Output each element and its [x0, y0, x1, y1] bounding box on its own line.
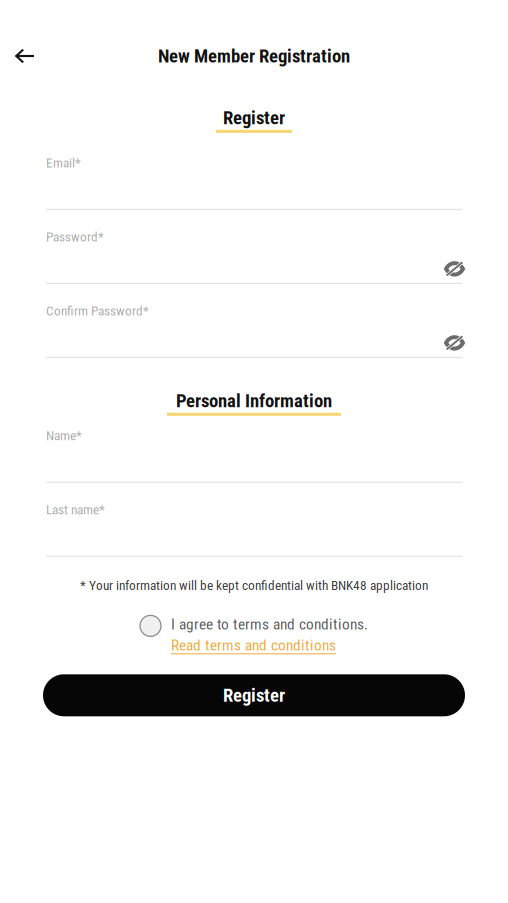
staticText: Password* [46, 229, 104, 245]
button[interactable]: Confirm Password* [46, 305, 462, 358]
button[interactable]: Back [0, 38, 50, 74]
staticText: Last name* [46, 502, 105, 517]
staticText: Personal Information [176, 390, 332, 412]
staticText: Confirm Password* [46, 303, 149, 319]
button[interactable]: Name* [46, 430, 462, 483]
staticText: Register [223, 107, 285, 129]
button[interactable]: Password* [46, 231, 462, 284]
button[interactable]: Show password [445, 261, 462, 276]
button[interactable]: Last name* [46, 504, 462, 557]
button[interactable]: Email* [46, 157, 462, 210]
staticText: Read terms and conditions [171, 636, 336, 654]
button[interactable]: Show password [445, 335, 462, 350]
button[interactable]: Read terms and conditions [171, 636, 336, 654]
staticText: I agree to terms and conditions. [171, 615, 368, 633]
staticText: * Your information will be kept confiden… [80, 578, 428, 593]
staticText: New Member Registration [158, 45, 350, 67]
staticText: Register [223, 684, 285, 706]
button[interactable]: Register [43, 674, 465, 716]
staticText: Email* [46, 155, 81, 171]
staticText: Name* [46, 428, 82, 443]
button[interactable]: I agree to terms and conditions [140, 615, 161, 636]
